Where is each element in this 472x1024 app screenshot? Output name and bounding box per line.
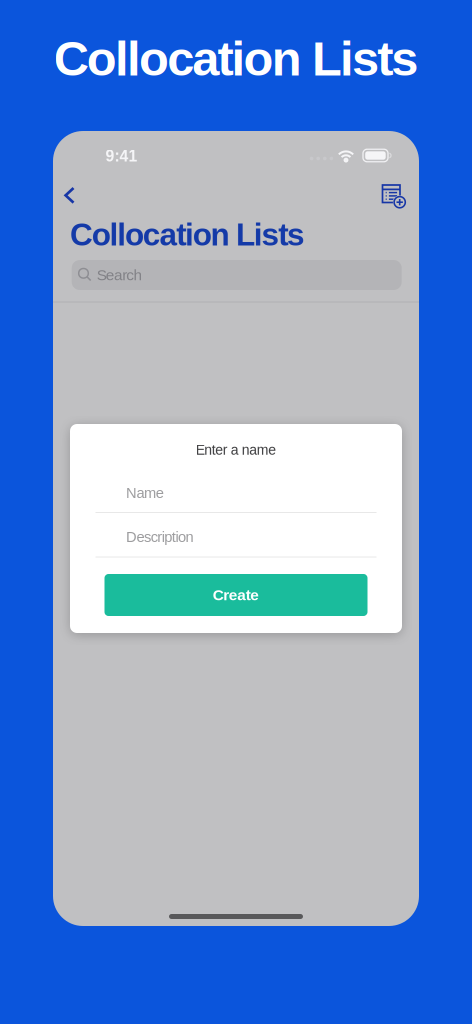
staticText: 9:41 [105,147,137,165]
button[interactable]: Back [50,175,90,215]
staticText: Enter a name [196,442,276,458]
button[interactable]: Description [70,518,402,556]
staticText: Collocation Lists [54,31,418,86]
button[interactable]: Create [104,574,367,616]
button[interactable]: Name [70,474,402,512]
staticText: Create [213,586,259,603]
staticText: Description [126,529,193,545]
staticText: Name [126,485,164,501]
staticText: Search [97,266,142,283]
button[interactable]: Search [72,260,402,290]
button[interactable]: New list [374,176,414,216]
staticText: Collocation Lists [70,217,305,252]
